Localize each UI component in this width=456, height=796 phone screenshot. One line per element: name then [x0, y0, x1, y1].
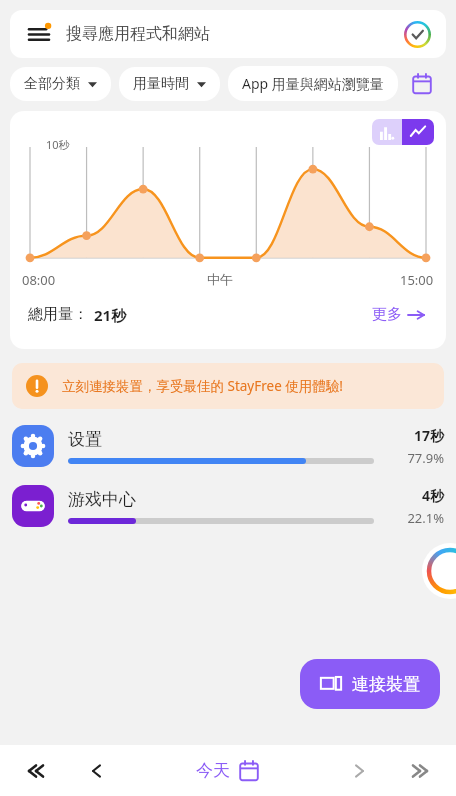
button[interactable]: Calendar — [406, 68, 438, 100]
button[interactable]: Menu — [24, 19, 54, 49]
staticText: 全部分類 — [24, 75, 80, 93]
button[interactable]: Status — [402, 19, 432, 49]
staticText: 17秒 — [413, 426, 444, 445]
button[interactable]: Usage ring — [422, 543, 456, 599]
staticText: 立刻連接裝置，享受最佳的 StayFree 使用體驗! — [62, 377, 343, 395]
staticText: 4秒 — [421, 486, 444, 505]
staticText: 搜尋應用程式和網站 — [66, 24, 210, 44]
button[interactable]: Line chart — [402, 119, 434, 145]
staticText: 22.1% — [407, 509, 444, 527]
staticText: App 用量與網站瀏覽量 — [242, 74, 384, 93]
button[interactable]: Last — [394, 745, 456, 796]
staticText: 游戏中心 — [68, 489, 136, 510]
staticText: 中午 — [207, 271, 233, 287]
staticText: 77.9% — [407, 449, 444, 467]
staticText: 08:00 — [22, 271, 56, 289]
staticText: 用量時間 — [133, 75, 189, 93]
button[interactable]: Menu — [10, 10, 446, 58]
staticText: 21秒 — [94, 305, 127, 325]
button[interactable]: App 用量與網站瀏覽量 — [228, 66, 398, 101]
button[interactable]: 今天 — [124, 745, 332, 796]
button[interactable]: 设置 — [0, 419, 456, 473]
button[interactable]: Next — [332, 745, 394, 796]
button[interactable]: 游戏中心 — [0, 479, 456, 533]
staticText: 總用量： — [28, 305, 88, 324]
button[interactable]: 全部分類 — [10, 67, 111, 101]
button[interactable]: Bar chart — [372, 119, 402, 145]
button[interactable]: Previous — [62, 745, 124, 796]
staticText: 今天 — [196, 760, 230, 781]
button[interactable]: 用量時間 — [119, 67, 220, 101]
button[interactable]: 更多 — [368, 301, 428, 328]
staticText: 15:00 — [400, 271, 434, 289]
button[interactable]: 連接裝置 — [300, 659, 440, 709]
staticText: 10秒 — [46, 137, 70, 152]
button[interactable]: 立刻連接裝置，享受最佳的 StayFree 使用體驗! — [12, 363, 444, 409]
button[interactable]: First — [0, 745, 62, 796]
staticText: 連接裝置 — [352, 674, 420, 695]
staticText: 更多 — [372, 305, 402, 324]
staticText: 设置 — [68, 429, 102, 450]
